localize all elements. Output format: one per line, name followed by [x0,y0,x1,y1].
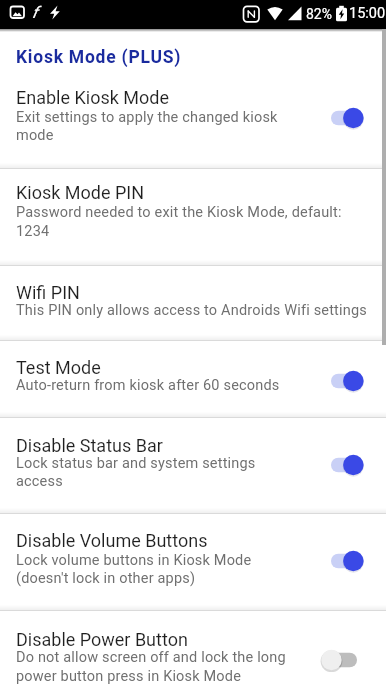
staticText: Disable Power Button [16,629,188,650]
staticText: Lock volume buttons in Kiosk Mode [16,552,252,569]
button[interactable]: Kiosk Mode PIN [0,168,386,265]
staticText: Exit settings to apply the changed kiosk [16,109,278,126]
staticText: Test Mode [16,357,101,378]
button[interactable]: Disable Power Button [0,610,386,686]
button[interactable] [318,453,366,477]
staticText: Disable Status Bar [16,435,163,456]
button[interactable]: Enable Kiosk Mode [0,72,386,168]
staticText: f [32,3,38,22]
staticText: Wifi PIN [16,282,80,303]
staticText: Auto-return from kiosk after 60 seconds [16,377,280,394]
staticText: power button press in Kiosk Mode [16,668,242,685]
button[interactable]: Wifi PIN [0,265,386,340]
staticText: 1234 [16,223,50,240]
staticText: mode [16,127,54,144]
staticText: This PIN only allows access to Androids … [16,302,367,319]
staticText: Disable Volume Buttons [16,530,208,551]
button[interactable] [318,549,366,573]
staticText: Kiosk Mode PIN [16,182,145,203]
staticText: access [16,473,63,490]
staticText: 82% [306,6,332,22]
staticText: (doesn't lock in other apps) [16,570,196,587]
staticText: Do not allow screen off and lock the lon… [16,649,286,666]
staticText: 15:00 [349,5,386,22]
staticText: Kiosk Mode (PLUS) [16,47,182,68]
button[interactable]: Disable Status Bar [0,417,386,513]
button[interactable] [318,369,366,393]
staticText: Lock status bar and system settings [16,455,256,472]
button[interactable] [318,106,366,130]
button[interactable]: Disable Volume Buttons [0,513,386,610]
button[interactable]: Test Mode [0,340,386,417]
button[interactable] [318,648,366,672]
staticText: Password needed to exit the Kiosk Mode, … [16,204,342,221]
staticText: Enable Kiosk Mode [16,87,169,108]
